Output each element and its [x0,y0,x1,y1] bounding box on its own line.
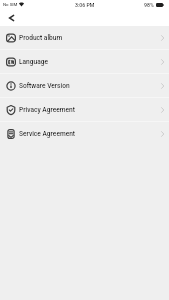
staticText: Software Version [19,82,70,90]
staticText: Language [19,58,49,66]
staticText: 98% [144,2,154,8]
staticText: Product album [19,34,63,42]
staticText: 3:06 PM [75,2,95,8]
button[interactable]: Software Version [0,74,169,98]
button[interactable]: Back [4,10,20,26]
button[interactable]: Product album [0,26,169,50]
button[interactable]: Language [0,50,169,74]
button[interactable]: Privacy Agreement [0,98,169,122]
staticText: Service Agreement [19,130,76,138]
button[interactable]: Service Agreement [0,122,169,146]
staticText: Privacy Agreement [19,106,75,114]
staticText: No SIM [3,2,18,7]
